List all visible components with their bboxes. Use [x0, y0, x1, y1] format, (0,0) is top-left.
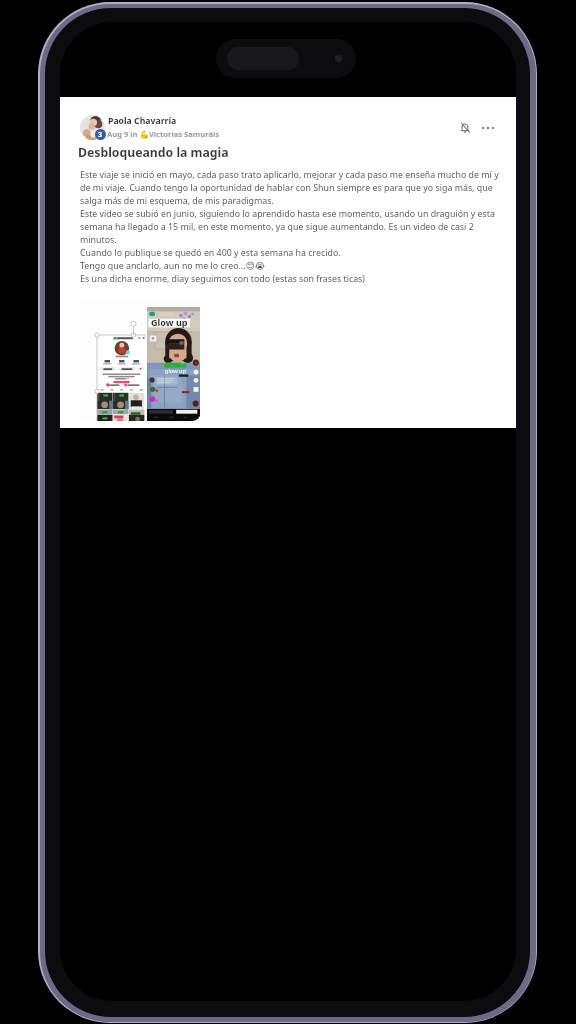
staticText: Paola Chavarría — [108, 115, 177, 127]
button[interactable]: Turn off notifications — [453, 116, 477, 140]
staticText: Este video se subió en junio, siguiendo … — [80, 208, 500, 246]
staticText: Aug 9 in 💪Victorias Samuráis — [107, 129, 220, 139]
staticText: Cuando lo publique se quedó en 400 y est… — [80, 247, 341, 259]
staticText: Desbloqueando la magia — [78, 144, 229, 161]
staticText: Tengo que anclarlo, aun no me lo creo...… — [80, 260, 266, 272]
staticText: Es una dicha enorme, diay seguimos con t… — [80, 273, 365, 285]
staticText: glow up — [165, 367, 186, 375]
button[interactable]: More options — [476, 116, 500, 140]
button[interactable]: Glow up — [79, 301, 201, 421]
staticText: Este viaje se inició en mayo, cada paso … — [80, 169, 500, 207]
staticText: 3 — [98, 130, 103, 140]
staticText: Glow up — [151, 316, 188, 328]
